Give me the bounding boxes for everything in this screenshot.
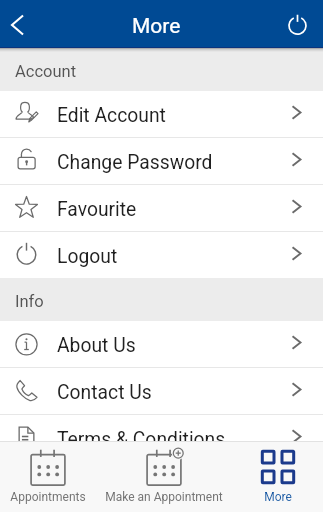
staticText: Terms & Conditions [57, 428, 226, 441]
staticText: Appointments [10, 490, 86, 504]
staticText: Contact Us [57, 381, 152, 404]
staticText: Account [15, 62, 77, 81]
staticText: More [132, 14, 181, 39]
staticText: Edit Account [57, 104, 166, 127]
staticText: More [264, 490, 292, 504]
button[interactable]: Edit Account [0, 91, 323, 137]
staticText: About Us [57, 334, 136, 357]
button[interactable]: Logout [0, 232, 323, 278]
button[interactable]: Appointments [0, 442, 95, 512]
button[interactable]: Back [0, 0, 40, 48]
button[interactable]: Change Password [0, 138, 323, 184]
button[interactable]: About Us [0, 321, 323, 367]
button[interactable]: Terms & Conditions [0, 415, 323, 441]
button[interactable]: Log out [279, 0, 323, 48]
button[interactable]: Contact Us [0, 368, 323, 414]
staticText: Make an Appointment [105, 490, 223, 504]
button[interactable]: More [232, 442, 323, 512]
staticText: Info [15, 292, 44, 311]
staticText: Favourite [57, 198, 137, 221]
staticText: Logout [57, 245, 118, 268]
button[interactable]: Make an Appointment [95, 442, 232, 512]
staticText: Change Password [57, 151, 213, 174]
button[interactable]: Favourite [0, 185, 323, 231]
